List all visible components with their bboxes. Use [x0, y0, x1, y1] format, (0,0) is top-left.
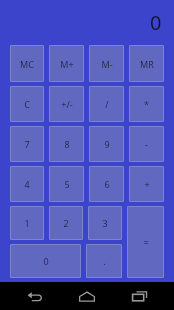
button[interactable]: + — [129, 166, 164, 202]
staticText: = — [143, 236, 149, 248]
button[interactable]: 0 — [10, 244, 81, 278]
button[interactable]: M+ — [49, 45, 84, 82]
staticText: M- — [101, 58, 113, 70]
button[interactable]: / — [89, 86, 124, 122]
button[interactable]: MR — [129, 45, 164, 82]
staticText: 4 — [24, 178, 30, 190]
staticText: MR — [140, 58, 154, 70]
staticText: 0 — [150, 9, 162, 36]
staticText: 3 — [102, 217, 108, 229]
button[interactable]: . — [86, 244, 122, 278]
button[interactable]: Back — [18, 283, 52, 309]
button[interactable]: 4 — [10, 166, 44, 202]
staticText: . — [103, 255, 106, 267]
staticText: 2 — [63, 217, 69, 229]
staticText: +/- — [61, 98, 73, 110]
button[interactable]: 3 — [88, 206, 122, 240]
button[interactable]: 5 — [49, 166, 84, 202]
staticText: 5 — [64, 178, 70, 190]
staticText: 0 — [43, 255, 49, 267]
staticText: MC — [20, 58, 34, 70]
staticText: 7 — [24, 138, 30, 150]
staticText: * — [144, 98, 149, 110]
button[interactable]: M- — [89, 45, 124, 82]
button[interactable]: 9 — [89, 126, 124, 162]
staticText: / — [105, 98, 109, 110]
button[interactable]: Home — [70, 283, 104, 309]
staticText: 8 — [64, 138, 70, 150]
button[interactable]: MC — [10, 45, 44, 82]
button[interactable]: Recents — [122, 283, 156, 309]
button[interactable]: 6 — [89, 166, 124, 202]
staticText: 6 — [104, 178, 110, 190]
staticText: - — [145, 138, 148, 150]
staticText: C — [24, 98, 30, 110]
button[interactable]: 1 — [10, 206, 44, 240]
button[interactable]: 7 — [10, 126, 44, 162]
button[interactable]: = — [127, 206, 164, 278]
button[interactable]: +/- — [49, 86, 84, 122]
button[interactable]: 8 — [49, 126, 84, 162]
staticText: + — [144, 178, 150, 190]
button[interactable]: C — [10, 86, 44, 122]
staticText: M+ — [60, 58, 74, 70]
button[interactable]: 2 — [49, 206, 83, 240]
button[interactable]: - — [129, 126, 164, 162]
staticText: 9 — [104, 138, 110, 150]
button[interactable]: * — [129, 86, 164, 122]
staticText: 1 — [24, 217, 30, 229]
